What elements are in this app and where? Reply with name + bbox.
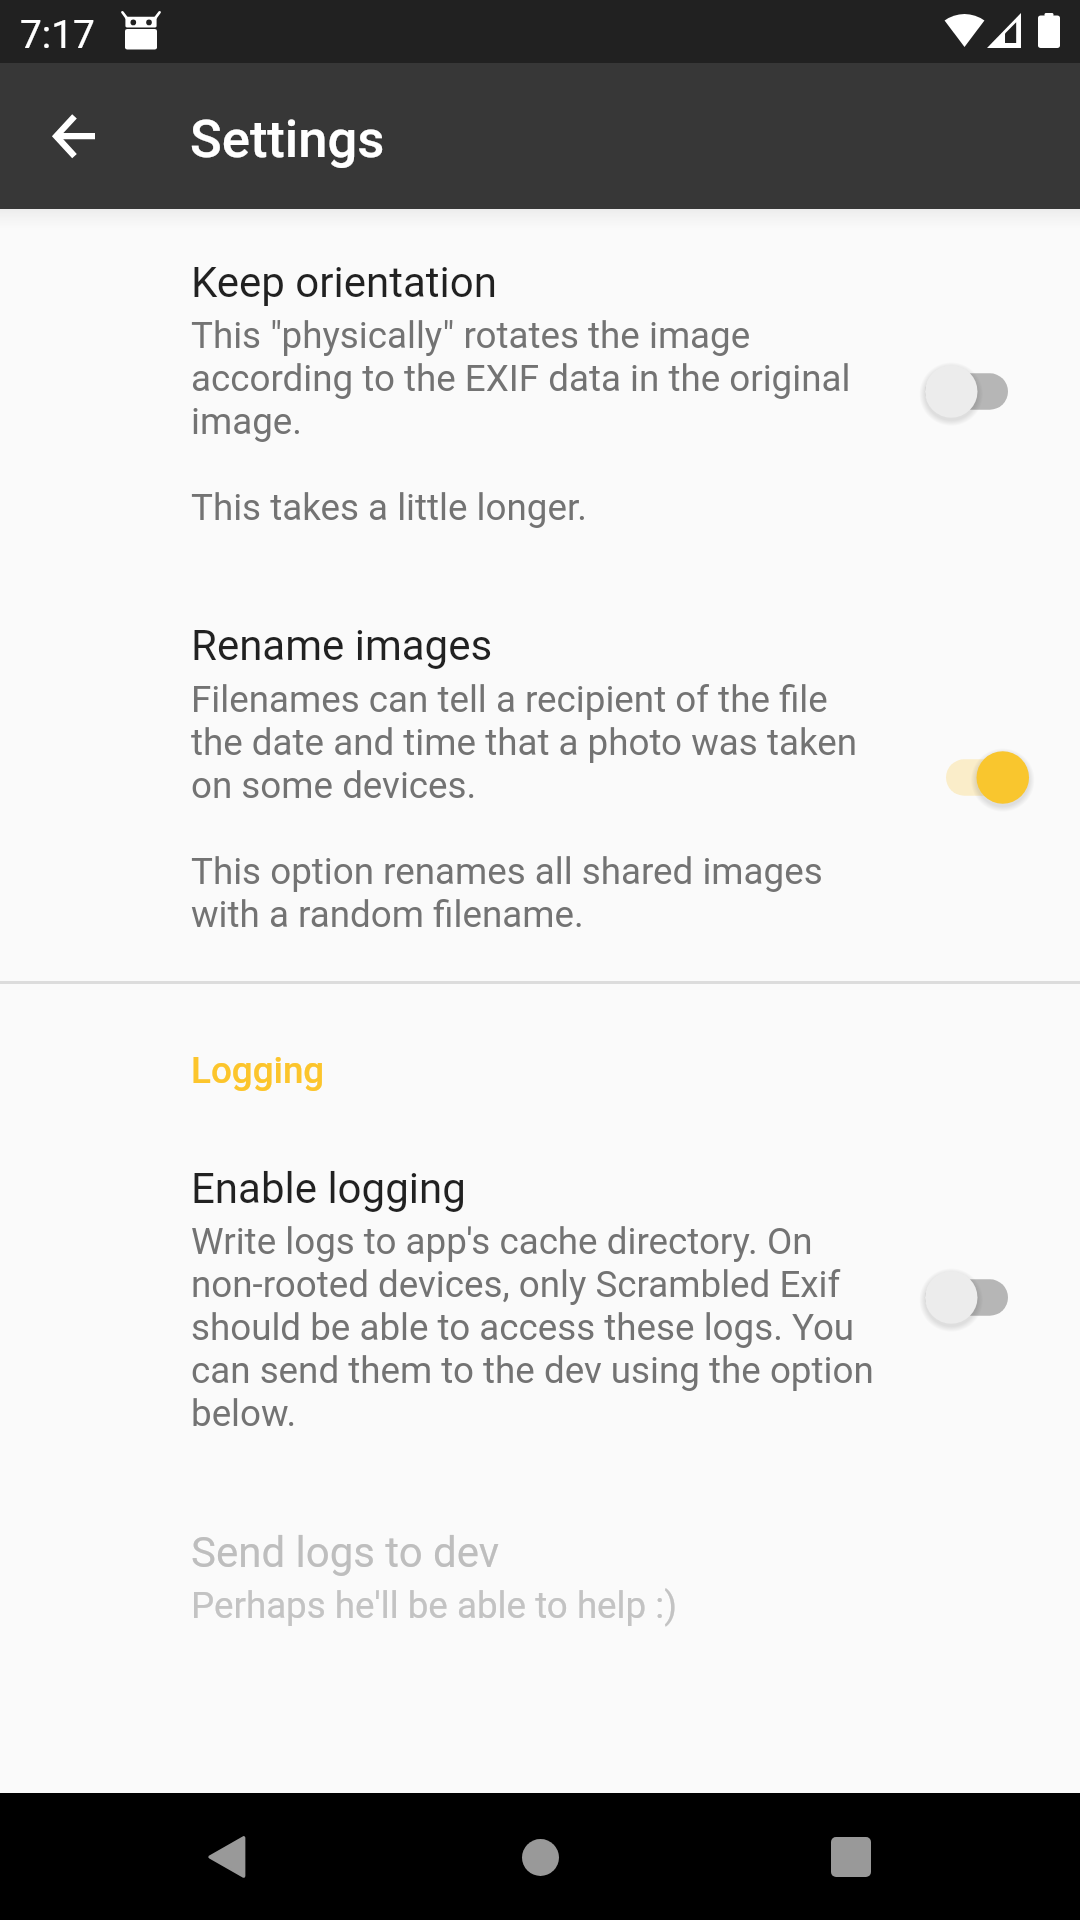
staticText: Filenames can tell a recipient of the fi… xyxy=(191,678,879,936)
button[interactable]: Rename images xyxy=(0,575,1080,942)
button[interactable]: Enable logging xyxy=(0,1120,1080,1450)
staticText: Enable logging xyxy=(191,1164,466,1213)
staticText: 7:17 xyxy=(20,12,95,57)
staticText: Settings xyxy=(190,108,385,170)
button[interactable]: Recent apps xyxy=(779,1794,923,1920)
button[interactable]: Switch off xyxy=(909,349,1024,434)
staticText: Write logs to app's cache directory. On … xyxy=(191,1220,879,1435)
button[interactable]: Navigate up xyxy=(11,73,137,199)
staticText: Send logs to dev xyxy=(191,1528,500,1577)
staticText: This "physically" rotates the image acco… xyxy=(191,314,879,529)
button[interactable]: Keep orientation xyxy=(0,210,1080,546)
staticText: Logging xyxy=(191,1049,325,1092)
button[interactable]: Switch off xyxy=(909,1255,1024,1340)
staticText: Keep orientation xyxy=(191,258,497,307)
button[interactable]: Send logs to dev xyxy=(0,1490,1080,1650)
button[interactable]: Home xyxy=(468,1794,612,1920)
staticText: Perhaps he'll be able to help :) xyxy=(191,1584,677,1627)
button[interactable]: Switch on xyxy=(930,735,1045,820)
button[interactable]: Back xyxy=(154,1794,298,1920)
staticText: Rename images xyxy=(191,621,493,670)
